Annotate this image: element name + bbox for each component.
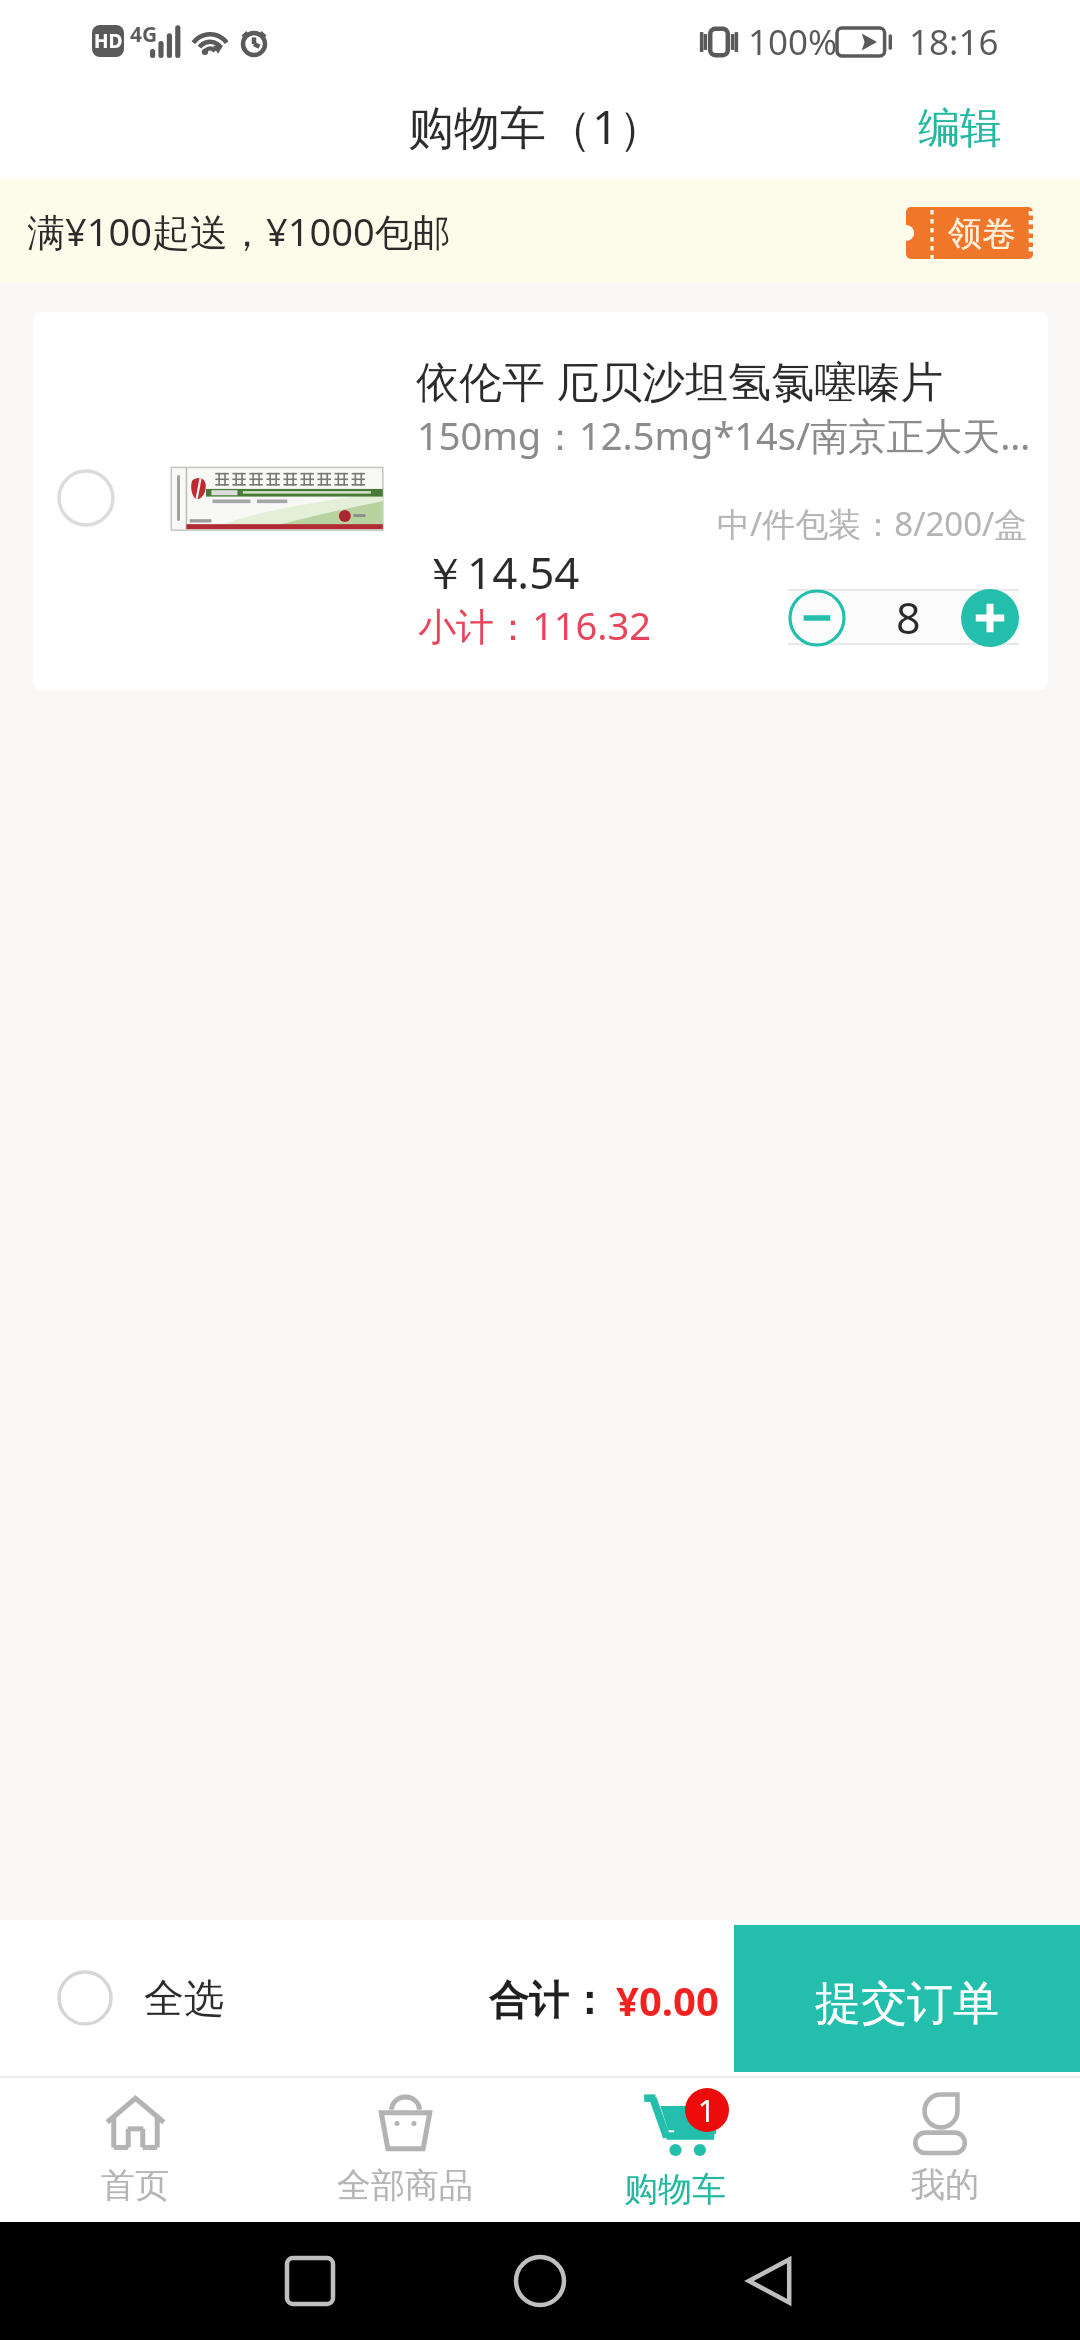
staticText: 全选 xyxy=(144,1973,224,2023)
staticText: 18:16 xyxy=(909,18,999,66)
staticText: 领卷 xyxy=(948,212,1016,255)
staticText: 中/件包装：8/200/盒 xyxy=(717,501,1028,546)
button[interactable]: 领卷 xyxy=(906,207,1033,259)
staticText: ￥14.54 xyxy=(423,542,580,602)
staticText: 依伦平 厄贝沙坦氢氯噻嗪片 xyxy=(416,351,944,410)
button[interactable]: Decrease quantity xyxy=(788,589,846,647)
staticText: 1 xyxy=(698,2090,716,2131)
button[interactable]: Back xyxy=(715,2226,825,2336)
button[interactable]: Home xyxy=(485,2226,595,2336)
button[interactable]: 编辑 xyxy=(888,86,1080,171)
button[interactable]: 我的 xyxy=(810,2076,1080,2222)
staticText: 全部商品 xyxy=(337,2164,473,2207)
staticText: HD xyxy=(94,28,123,54)
staticText: 8 xyxy=(896,588,921,647)
staticText: 小计：116.32 xyxy=(418,599,651,651)
staticText: 编辑 xyxy=(918,102,1002,155)
button[interactable]: 1 xyxy=(540,2076,810,2222)
staticText: 购物车（1） xyxy=(408,95,665,158)
staticText: 提交订单 xyxy=(815,1975,999,2033)
staticText: 4G xyxy=(130,20,158,49)
staticText: 满¥100起送，¥1000包邮 xyxy=(27,205,451,257)
button[interactable]: Increase quantity xyxy=(961,589,1019,647)
button[interactable]: 提交订单 xyxy=(734,1925,1080,2072)
button[interactable]: Select item xyxy=(33,312,1048,690)
staticText: ¥0.00 xyxy=(616,1973,719,2027)
staticText: 首页 xyxy=(101,2164,169,2207)
staticText: 合计： xyxy=(489,1975,609,2025)
staticText: 购物车 xyxy=(624,2168,726,2211)
staticText: 150mg：12.5mg*14s/南京正大天… xyxy=(417,409,1031,461)
button[interactable]: Recent apps xyxy=(255,2226,365,2336)
staticText: 100% xyxy=(748,18,838,66)
button[interactable]: 首页 xyxy=(0,2076,270,2222)
button[interactable]: Select all xyxy=(57,1970,113,2026)
button[interactable]: Select item xyxy=(57,469,115,527)
staticText: 我的 xyxy=(911,2163,979,2206)
button[interactable]: 全部商品 xyxy=(270,2076,540,2222)
